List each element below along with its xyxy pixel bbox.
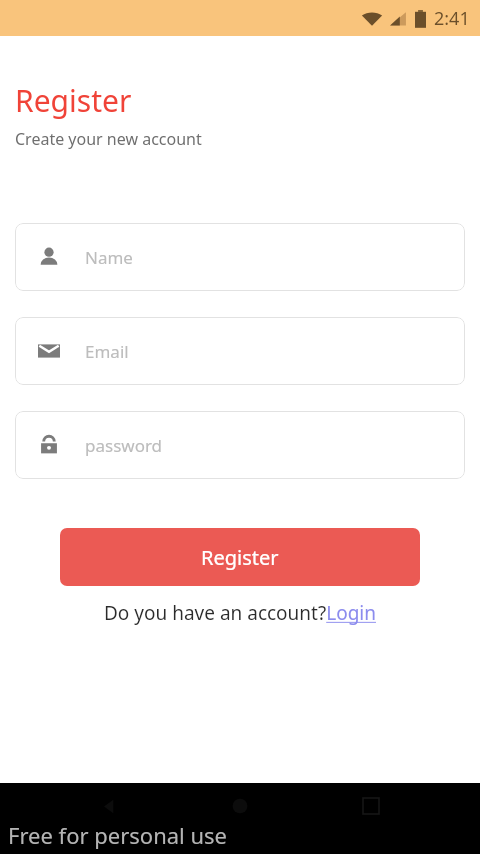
button[interactable]: Password <box>15 411 465 479</box>
staticText: Free for personal use <box>8 820 228 850</box>
staticText: Register <box>201 544 279 571</box>
staticText: Email <box>85 340 129 363</box>
button[interactable]: Name <box>15 223 465 291</box>
staticText: Register <box>15 80 132 121</box>
staticText: Name <box>85 246 133 269</box>
button[interactable]: Recent apps <box>349 784 393 828</box>
button[interactable]: Register <box>60 528 420 586</box>
other: Password <box>38 434 60 456</box>
other: Name <box>38 246 60 268</box>
other: Email <box>38 340 60 362</box>
staticText: password <box>85 434 163 457</box>
button[interactable]: Email <box>15 317 465 385</box>
staticText: 2:41 <box>434 6 470 31</box>
button[interactable]: Do you have an account?Login <box>104 600 376 626</box>
staticText: Create your new account <box>15 128 202 150</box>
button[interactable]: Home <box>218 784 262 828</box>
